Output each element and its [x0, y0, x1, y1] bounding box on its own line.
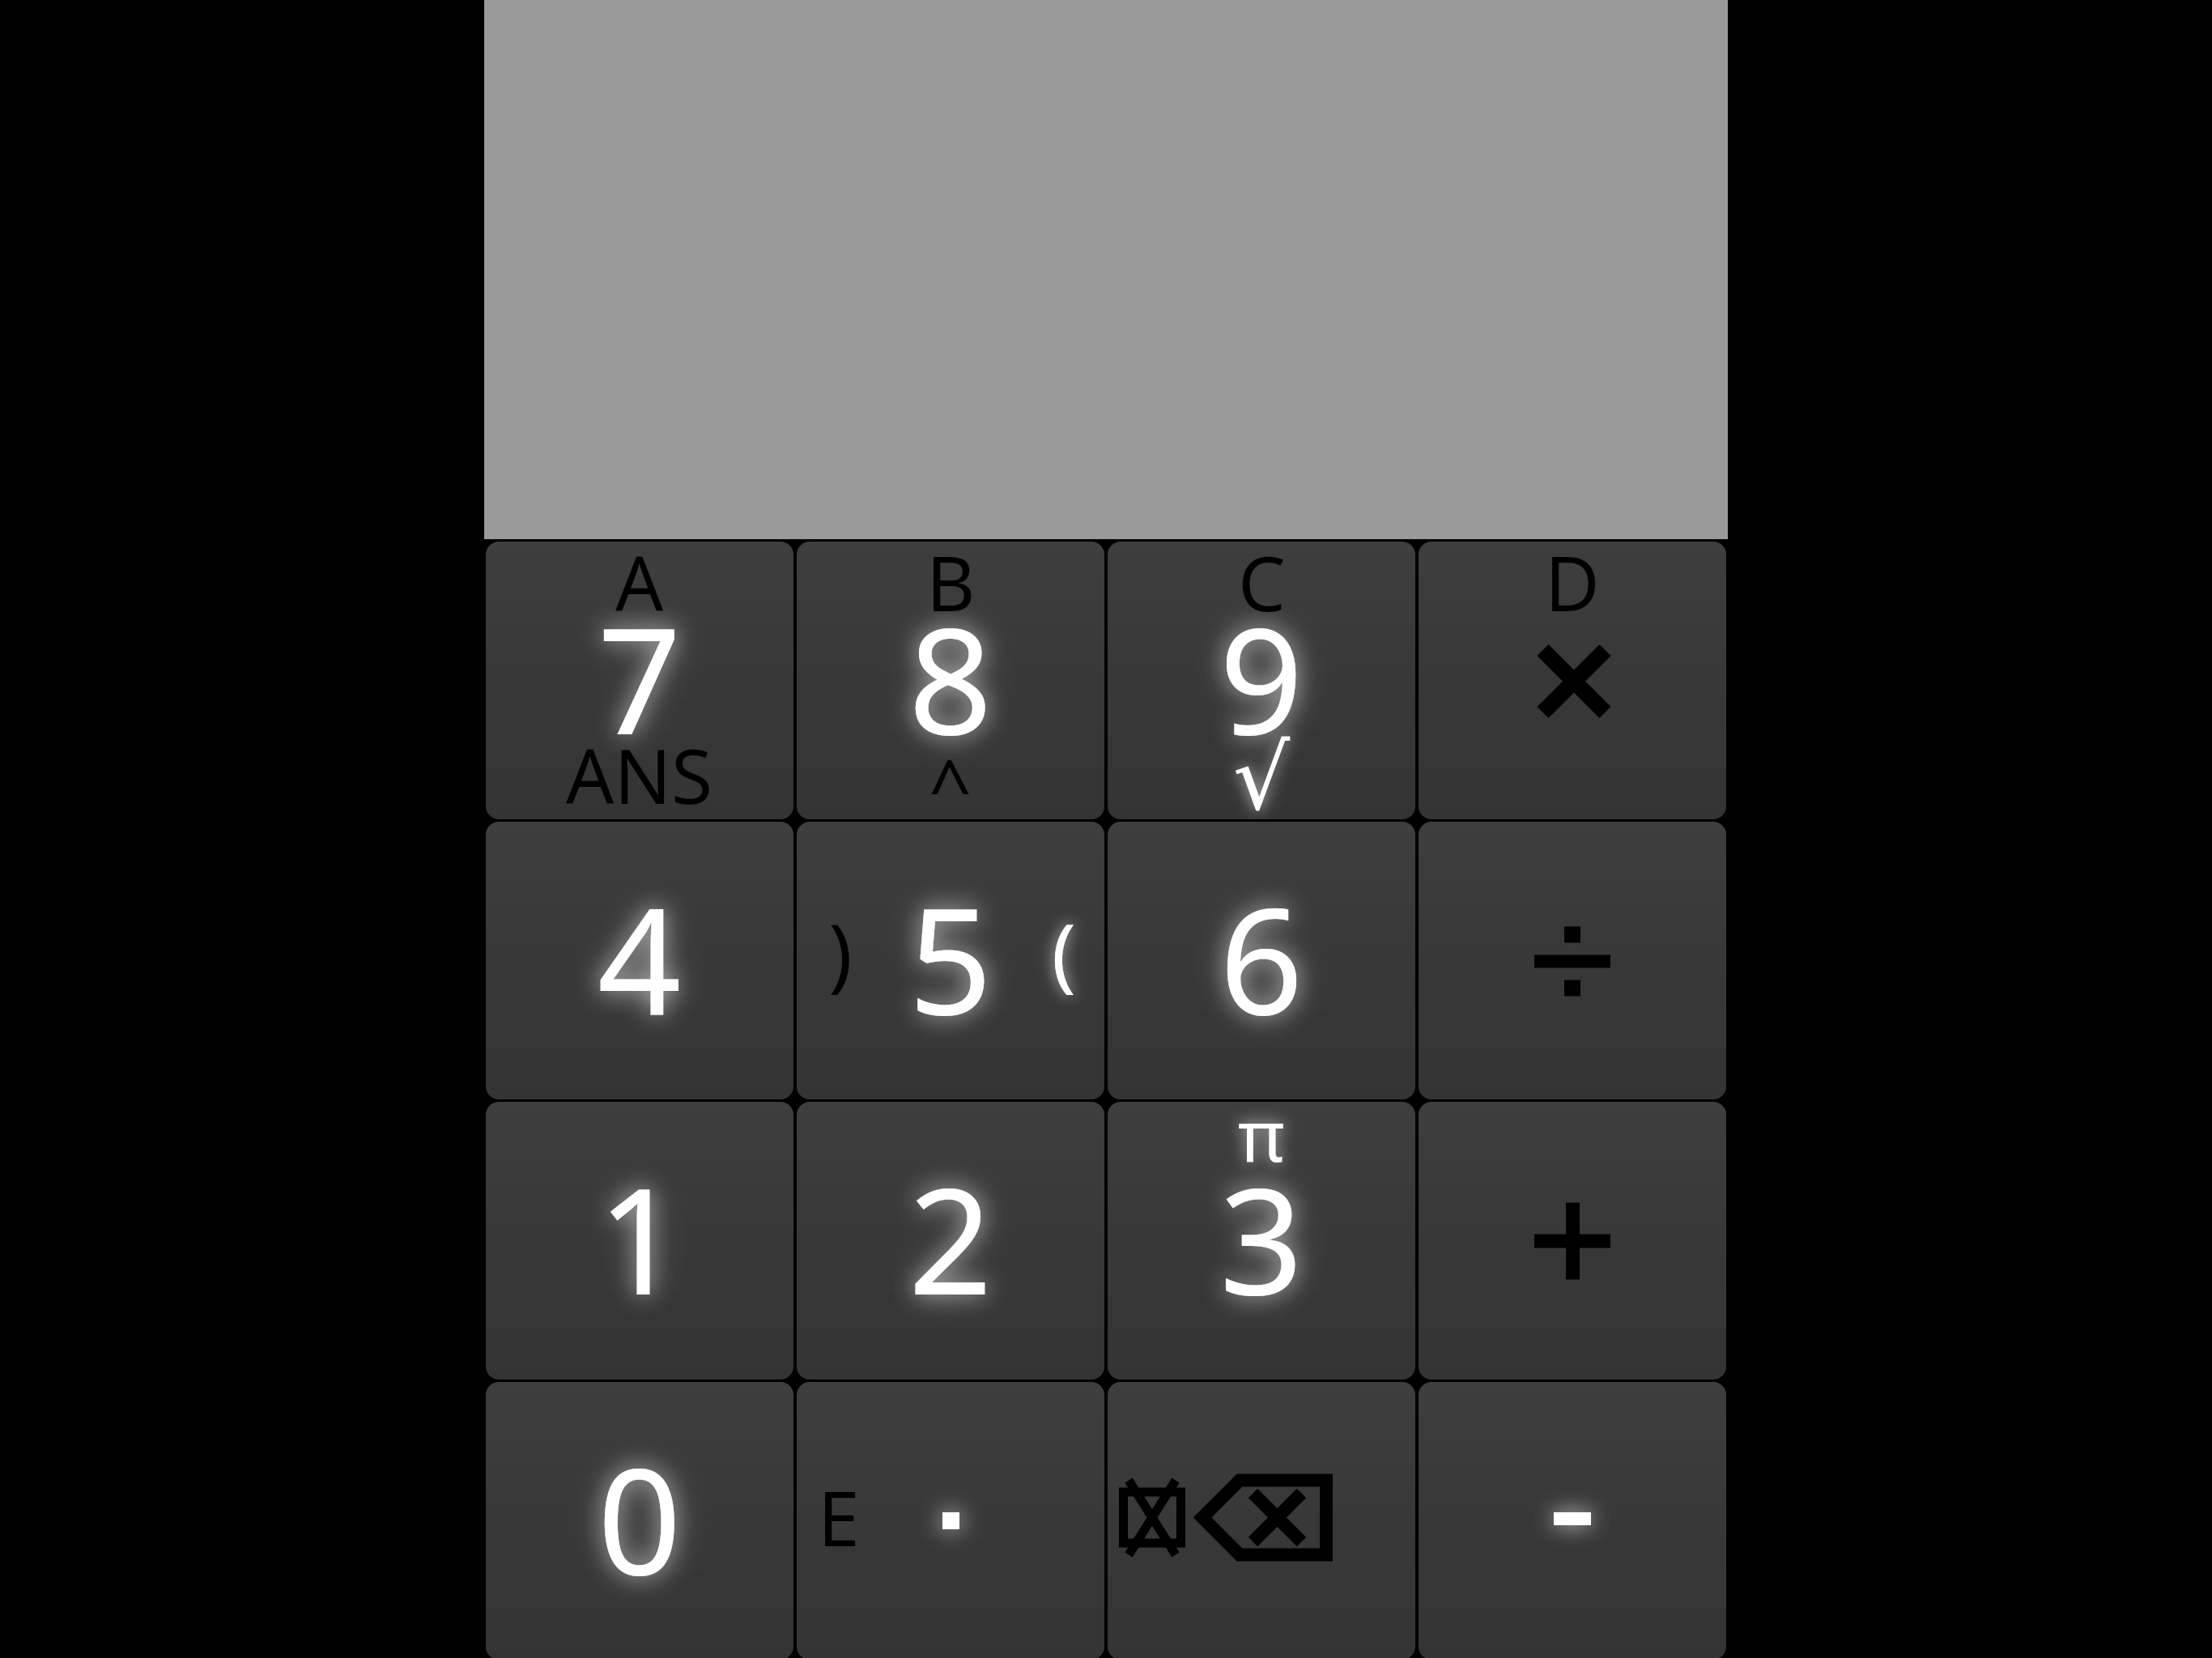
staticText: 8 [908, 578, 993, 778]
staticText: 1 [598, 1138, 682, 1338]
staticText: 8 [908, 578, 993, 778]
button[interactable]: Multiply [1419, 542, 1726, 819]
staticText: ( [1052, 896, 1076, 1005]
button[interactable]: Backspace, clear [1108, 1382, 1415, 1658]
staticText: 0 [598, 1418, 682, 1618]
button[interactable]: 7 [486, 542, 793, 819]
staticText: B [926, 542, 976, 634]
staticText: E [818, 1466, 860, 1569]
staticText: D [1545, 542, 1600, 634]
staticText: 7 [598, 578, 682, 778]
button[interactable]: Decimal point [797, 1382, 1104, 1658]
button[interactable]: 6 [1108, 822, 1415, 1099]
button[interactable]: 2 [797, 1102, 1104, 1380]
button[interactable]: Plus [1419, 1102, 1726, 1380]
button[interactable]: 0 [486, 1382, 793, 1658]
staticText: 2 [908, 1138, 993, 1338]
button[interactable]: 4 [486, 822, 793, 1099]
staticText: 5 [908, 858, 993, 1058]
staticText: ^ [929, 734, 972, 819]
staticText: 2 [908, 1138, 993, 1338]
button[interactable]: Minus [1419, 1382, 1726, 1658]
staticText: 4 [598, 858, 682, 1058]
staticText: ANS [566, 724, 713, 819]
staticText: 9 [1219, 578, 1304, 778]
button[interactable]: 9 [1108, 542, 1415, 819]
staticText: √ [1233, 726, 1291, 819]
staticText: 6 [1219, 858, 1304, 1058]
button[interactable]: 5 [797, 822, 1104, 1099]
staticText: 4 [598, 858, 682, 1058]
staticText: √ [1233, 726, 1291, 819]
staticText: π [1238, 1102, 1285, 1183]
staticText: 7 [598, 578, 682, 778]
staticText: 1 [598, 1138, 682, 1338]
button[interactable]: 3 [1108, 1102, 1415, 1380]
staticText: π [1238, 1102, 1285, 1183]
staticText: 3 [1219, 1138, 1304, 1338]
button[interactable]: Divide [1419, 822, 1726, 1099]
button[interactable]: 8 [797, 542, 1104, 819]
staticText: 2 [908, 1138, 993, 1338]
staticText: ) [828, 896, 853, 1005]
staticText: 0 [598, 1418, 682, 1618]
staticText: 5 [908, 858, 993, 1058]
staticText: π [1238, 1102, 1285, 1183]
staticText: ( [1052, 896, 1076, 1005]
staticText: 3 [1219, 1138, 1304, 1338]
staticText: 8 [908, 578, 993, 778]
staticText: ( [1052, 896, 1076, 1005]
staticText: 0 [598, 1418, 682, 1618]
staticText: 6 [1219, 858, 1304, 1058]
staticText: √ [1233, 726, 1291, 819]
staticText: 4 [598, 858, 682, 1058]
staticText: 9 [1219, 578, 1304, 778]
staticText: 9 [1219, 578, 1304, 778]
staticText: 5 [908, 858, 993, 1058]
staticText: A [615, 542, 664, 634]
staticText: 3 [1219, 1138, 1304, 1338]
staticText: 1 [598, 1138, 682, 1338]
button[interactable]: 1 [486, 1102, 793, 1380]
staticText: 7 [598, 578, 682, 778]
staticText: 6 [1219, 858, 1304, 1058]
staticText: C [1238, 542, 1286, 634]
